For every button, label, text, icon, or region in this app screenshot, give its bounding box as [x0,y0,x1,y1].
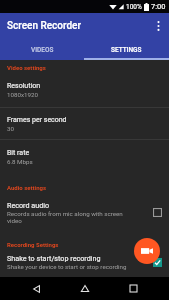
staticText: VIDEOS [31,46,54,54]
button[interactable]: Back [24,277,48,300]
staticText: 100% [126,3,142,11]
button[interactable]: Shake to start/stop recording [0,248,169,276]
staticText: Shake to start/stop recording [7,254,101,262]
button[interactable]: Start recording [134,238,160,264]
button[interactable]: VIDEOS [0,38,84,60]
button[interactable]: Bit rate [0,140,169,173]
staticText: Screen Recorder [7,20,81,32]
staticText: 6.8 Mbps [7,158,33,165]
staticText: Shake your device to start or stop recor… [7,263,133,270]
staticText: Recording Settings [7,241,59,248]
button[interactable]: Home [73,277,97,300]
button[interactable]: More options [147,15,169,37]
button[interactable]: Resolution [0,72,169,107]
staticText: SETTINGS [111,46,142,54]
button[interactable]: Record audio [0,194,169,230]
staticText: 7:00 [151,2,166,11]
staticText: Bit rate [7,149,30,157]
staticText: Frames per second [7,116,67,124]
staticText: 1080x1920 [7,91,38,98]
button[interactable]: SETTINGS [84,38,169,60]
staticText: Record audio [7,201,50,209]
staticText: Video settings [7,64,46,71]
button[interactable]: Recent apps [121,277,145,300]
staticText: Resolution [7,82,41,90]
staticText: Audio settings [7,184,47,191]
staticText: 30 [7,125,14,132]
button[interactable]: Frames per second [0,108,169,139]
staticText: Records audio from mic along with screen… [7,210,133,224]
